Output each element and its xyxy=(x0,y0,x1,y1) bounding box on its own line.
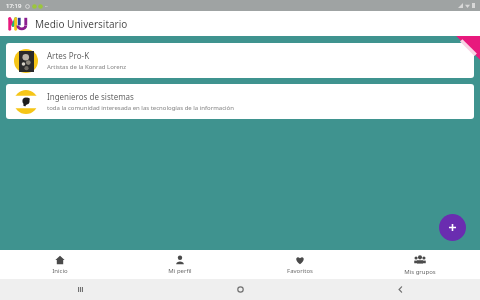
button[interactable]: Ingenieros de sistemas xyxy=(6,84,474,119)
staticText: Ingenieros de sistemas xyxy=(47,91,134,102)
button[interactable]: Inicio del sistema xyxy=(160,279,320,300)
button[interactable]: Atrás xyxy=(320,279,480,300)
button[interactable]: Nuevo xyxy=(446,36,480,70)
button[interactable]: Mis grupos xyxy=(360,250,480,279)
staticText: Inicio xyxy=(52,267,68,275)
button[interactable]: Artes Pro-K xyxy=(6,43,474,78)
staticText: Mi perfil xyxy=(168,267,192,275)
staticText: Artistas de la Konrad Lorenz xyxy=(47,63,127,71)
button[interactable]: Inicio xyxy=(0,250,120,279)
staticText: ·· xyxy=(45,3,48,10)
button[interactable]: Crear grupo xyxy=(439,214,466,241)
staticText: Favoritos xyxy=(287,267,313,275)
button[interactable]: Mi perfil xyxy=(120,250,240,279)
button[interactable]: Recientes xyxy=(0,279,160,300)
staticText: Medio Universitario xyxy=(35,17,128,31)
staticText: Mis grupos xyxy=(404,268,436,276)
staticText: Artes Pro-K xyxy=(47,50,90,61)
staticText: toda la comunidad interesada en las tecn… xyxy=(47,104,234,112)
staticText: 17:19 xyxy=(6,2,22,10)
button[interactable]: Favoritos xyxy=(240,250,360,279)
